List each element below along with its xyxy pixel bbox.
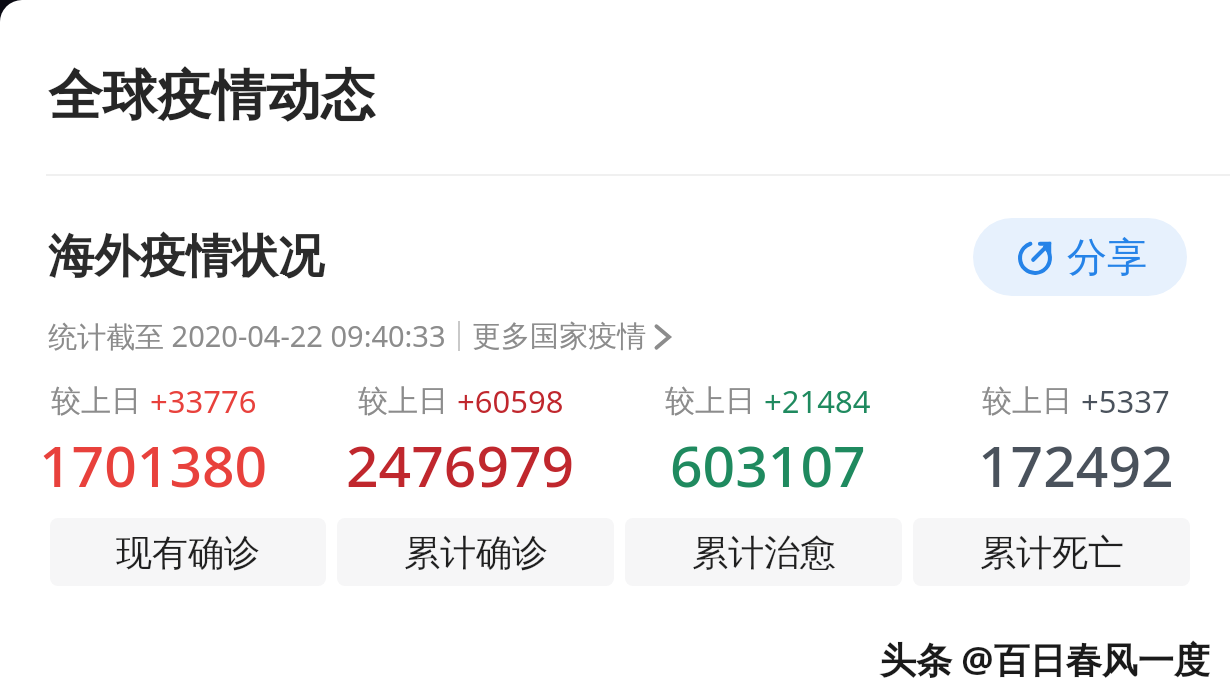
staticText: 较上日 bbox=[358, 382, 448, 420]
staticText: 更多国家疫情 bbox=[472, 318, 646, 355]
staticText: 172492 bbox=[978, 426, 1174, 504]
staticText: 累计治愈 bbox=[692, 530, 836, 575]
staticText: 海外疫情状况 bbox=[48, 228, 324, 286]
staticText: 603107 bbox=[670, 426, 866, 504]
staticText: 全球疫情动态 bbox=[48, 62, 375, 130]
staticText: +60598 bbox=[457, 380, 564, 422]
button[interactable]: 累计确诊 bbox=[337, 518, 614, 586]
staticText: 分享 bbox=[1067, 232, 1147, 282]
staticText: 较上日 bbox=[51, 382, 141, 420]
button[interactable]: 累计死亡 bbox=[913, 518, 1190, 586]
staticText: 累计死亡 bbox=[980, 530, 1124, 575]
staticText: 2476979 bbox=[346, 426, 575, 504]
staticText: 较上日 bbox=[665, 382, 755, 420]
staticText: 头条 @百日春风一度 bbox=[880, 635, 1210, 684]
button[interactable]: 较上日 bbox=[922, 380, 1230, 504]
staticText: 现有确诊 bbox=[116, 530, 260, 575]
staticText: 1701380 bbox=[39, 426, 268, 504]
staticText: +33776 bbox=[150, 380, 257, 422]
button[interactable]: 较上日 bbox=[614, 380, 922, 504]
button[interactable]: 现有确诊 bbox=[50, 518, 326, 586]
staticText: 统计截至 2020-04-22 09:40:33 bbox=[48, 316, 446, 356]
staticText: 累计确诊 bbox=[404, 530, 548, 575]
button[interactable]: 更多国家疫情 bbox=[472, 318, 674, 355]
staticText: +21484 bbox=[764, 380, 871, 422]
button[interactable]: 较上日 bbox=[0, 380, 307, 504]
button[interactable]: 较上日 bbox=[307, 380, 614, 504]
button[interactable]: 累计治愈 bbox=[625, 518, 902, 586]
button[interactable]: 分享 bbox=[973, 218, 1187, 296]
staticText: +5337 bbox=[1081, 380, 1170, 422]
staticText: 较上日 bbox=[982, 382, 1072, 420]
